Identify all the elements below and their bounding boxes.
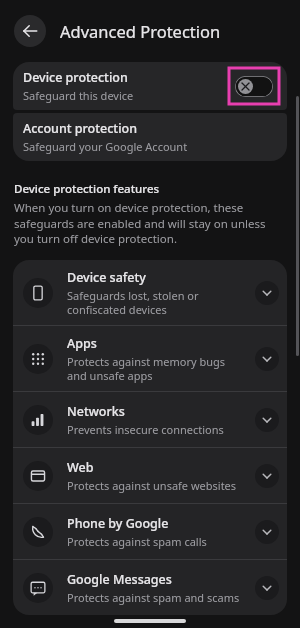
staticText: Google Messages [67,571,172,588]
button[interactable]: Phone by Google [13,504,287,559]
button[interactable]: Apps [13,326,287,391]
staticText: Protects against unsafe websites [67,478,237,493]
staticText: Safeguard this device [23,88,134,103]
button[interactable]: Google Messages [13,560,287,615]
staticText: Protects against spam and scams [67,590,240,605]
button[interactable]: Expand Networks [255,408,279,432]
staticText: Safeguard your Google Account [23,139,188,154]
staticText: Device protection features [14,181,160,197]
staticText: Protects against memory bugs and unsafe … [67,354,226,383]
staticText: Device protection [23,69,128,86]
staticText: Account protection [23,120,137,137]
button[interactable]: Back [14,15,46,47]
staticText: Web [67,459,94,476]
button[interactable]: Device protection toggle [226,66,282,106]
button[interactable]: Expand Web [255,464,279,488]
button[interactable]: Networks [13,392,287,447]
staticText: Advanced Protection [60,20,221,42]
staticText: Safeguards lost, stolen or confiscated d… [67,288,199,317]
staticText: Apps [67,335,97,352]
staticText: Networks [67,403,125,420]
staticText: When you turn on device protection, thes… [14,200,286,246]
button[interactable]: Account protection [13,113,287,161]
button[interactable]: Device protection [13,62,287,110]
button[interactable]: Device safety [13,260,287,325]
staticText: Phone by Google [67,515,169,532]
staticText: Protects against spam calls [67,534,207,549]
staticText: Prevents insecure connections [67,422,224,437]
button[interactable]: Web [13,448,287,503]
button[interactable]: Expand Apps [255,347,279,371]
button[interactable]: Expand Phone by Google [255,520,279,544]
staticText: Device safety [67,269,146,286]
button[interactable]: Expand Device safety [255,281,279,305]
button[interactable]: Expand Google Messages [255,576,279,600]
